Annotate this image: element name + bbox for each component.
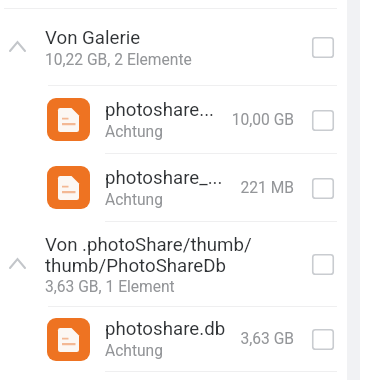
button[interactable]: Collapse group: [0, 28, 35, 64]
button[interactable]: Select item: [303, 319, 343, 359]
staticText: Achtung: [105, 342, 163, 360]
staticText: photoshare_...: [105, 167, 223, 189]
staticText: Von .photoShare/thumb/ thumb/PhotoShareD…: [45, 234, 252, 276]
button[interactable]: Collapse group: [0, 222, 366, 306]
button[interactable]: photoshare.db: [0, 307, 366, 371]
staticText: Von Galerie: [45, 27, 141, 49]
staticText: Achtung: [105, 123, 163, 141]
button[interactable]: Collapse group: [0, 9, 366, 85]
button[interactable]: Select item: [303, 168, 343, 208]
button[interactable]: Collapse group: [0, 245, 35, 281]
button[interactable]: Select item: [303, 244, 343, 284]
staticText: 3,63 GB, 1 Element: [45, 278, 175, 296]
staticText: photoshare.db: [105, 318, 226, 340]
staticText: 221 MB: [204, 179, 294, 197]
button[interactable]: Select item: [303, 27, 343, 67]
button[interactable]: photoshare_...: [0, 154, 366, 221]
button[interactable]: Select item: [303, 100, 343, 140]
staticText: Achtung: [105, 191, 163, 209]
staticText: 10,00 GB: [204, 111, 294, 129]
staticText: photoshare...: [105, 99, 214, 121]
staticText: 3,63 GB: [204, 330, 294, 348]
button[interactable]: photoshare...: [0, 86, 366, 153]
staticText: 10,22 GB, 2 Elemente: [45, 51, 192, 69]
